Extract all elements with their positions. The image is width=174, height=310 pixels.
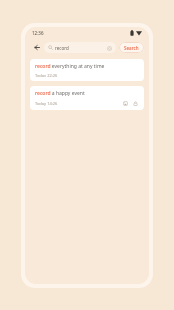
staticText: record (55, 45, 69, 51)
button[interactable]: Clear (106, 45, 112, 51)
staticText: record everything at any time (35, 63, 105, 70)
staticText: Today 22:26 (35, 73, 58, 77)
button[interactable]: Locked (132, 100, 139, 106)
staticText: Today 14:26 (35, 101, 58, 106)
staticText: record a happy event (35, 90, 85, 97)
staticText: Search (124, 45, 139, 51)
button[interactable]: Search (119, 42, 144, 53)
button[interactable]: Image attachment (122, 100, 129, 106)
button[interactable]: record a happy event (30, 86, 144, 110)
button[interactable]: record everything at any time (30, 59, 144, 81)
button[interactable]: record (44, 42, 116, 53)
staticText: 12:36 (32, 30, 44, 36)
button[interactable]: Back (30, 41, 42, 53)
